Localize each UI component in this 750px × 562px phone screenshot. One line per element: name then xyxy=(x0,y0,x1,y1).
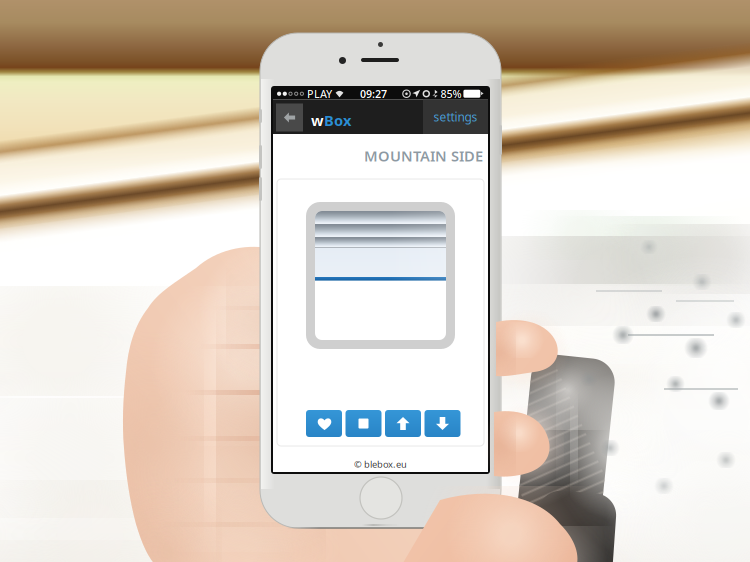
button[interactable]: Close xyxy=(424,410,460,437)
staticText: 09:27 xyxy=(360,87,387,101)
staticText: © blebox.eu xyxy=(354,458,407,470)
staticText: 85% xyxy=(440,87,461,101)
staticText: MOUNTAIN SIDE xyxy=(364,146,483,165)
staticText: Box xyxy=(324,110,351,130)
button[interactable]: Favourite xyxy=(306,410,342,437)
staticText: settings xyxy=(433,109,477,125)
staticText: w xyxy=(311,110,324,130)
button[interactable]: settings xyxy=(423,99,488,134)
button[interactable]: Open xyxy=(385,410,421,437)
button[interactable]: Back xyxy=(276,103,303,131)
staticText: PLAY xyxy=(307,87,332,101)
button[interactable]: Stop xyxy=(345,410,381,437)
